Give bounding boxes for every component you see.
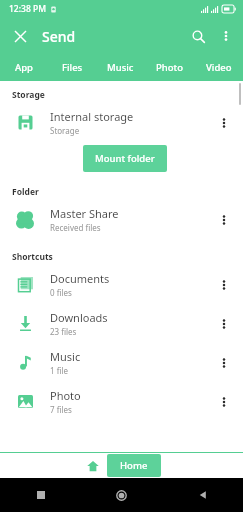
staticText: Mount folder <box>95 152 155 165</box>
button[interactable]: More options for Internal storage <box>209 108 239 138</box>
staticText: Downloads <box>50 310 108 325</box>
button[interactable]: App <box>0 54 48 81</box>
staticText: Folder <box>12 186 39 198</box>
staticText: 23 files <box>50 326 77 337</box>
button[interactable]: Video <box>194 54 243 81</box>
button[interactable]: Photo <box>145 54 194 81</box>
button[interactable]: More options for Downloads <box>209 309 239 339</box>
staticText: Files <box>62 61 83 74</box>
staticText: Internal storage <box>50 109 134 124</box>
staticText: Music <box>50 349 81 364</box>
button[interactable]: Home <box>81 478 162 512</box>
staticText: Photo <box>50 388 81 403</box>
staticText: Music <box>107 61 134 74</box>
staticText: Storage <box>12 89 45 101</box>
staticText: Shortcuts <box>12 251 53 263</box>
staticText: App <box>15 61 34 74</box>
staticText: Storage <box>50 125 80 136</box>
staticText: 1 file <box>50 365 69 376</box>
staticText: Received files <box>50 222 101 233</box>
button[interactable]: Documents <box>0 265 243 304</box>
button[interactable]: Music <box>96 54 145 81</box>
button[interactable]: More options for Documents <box>209 270 239 300</box>
button[interactable]: Back <box>162 478 243 512</box>
staticText: 12:38 PM <box>9 3 46 15</box>
staticText: Photo <box>156 61 183 74</box>
staticText: Video <box>206 61 232 74</box>
button[interactable]: More options for Master Share <box>209 205 239 235</box>
button[interactable]: Search <box>183 21 213 51</box>
staticText: 7 files <box>50 404 72 415</box>
button[interactable]: Master Share <box>0 200 243 239</box>
button[interactable]: Home <box>82 455 104 477</box>
button[interactable]: Downloads <box>0 304 243 343</box>
button[interactable]: Music <box>0 343 243 382</box>
button[interactable]: Home <box>107 454 161 477</box>
staticText: Send <box>42 27 76 46</box>
button[interactable]: More options for Music <box>209 348 239 378</box>
button[interactable]: More options <box>213 23 239 49</box>
staticText: Master Share <box>50 206 119 221</box>
button[interactable]: Close <box>6 22 34 50</box>
button[interactable]: More options for Photo <box>209 387 239 417</box>
button[interactable]: Photo <box>0 382 243 421</box>
button[interactable]: Internal storage <box>0 103 243 142</box>
button[interactable]: Mount folder <box>83 145 167 172</box>
button[interactable]: Recents <box>0 478 81 512</box>
staticText: Documents <box>50 271 110 286</box>
staticText: Home <box>120 459 148 472</box>
staticText: 0 files <box>50 287 72 298</box>
button[interactable]: Files <box>48 54 96 81</box>
